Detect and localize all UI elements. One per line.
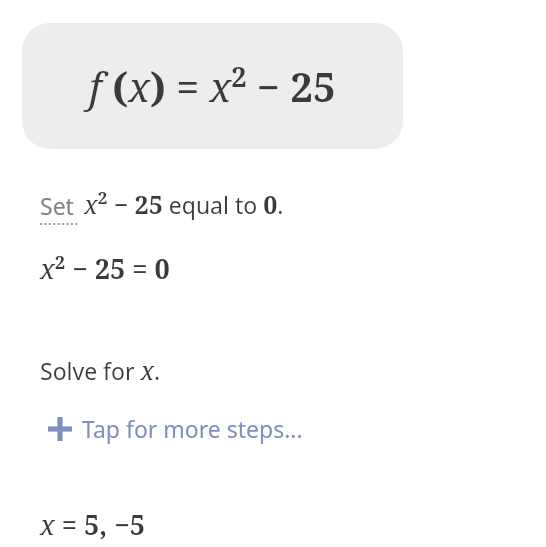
button[interactable]: f (x) = x2 − 25 (22, 23, 403, 149)
button[interactable]: Set (40, 186, 284, 225)
staticText: x2 − 25 = 0 (40, 249, 170, 287)
staticText: x = 5, −5 (40, 506, 145, 543)
staticText: f (x) = x2 − 25 (89, 58, 336, 114)
button[interactable]: Tap for more steps (48, 413, 303, 444)
button[interactable]: Solve for x. (40, 353, 161, 387)
staticText: Solve for x. (40, 353, 161, 387)
staticText: Set (40, 190, 74, 221)
staticText: Tap for more steps... (82, 413, 303, 444)
staticText: x2 − 25 equal to 0. (78, 186, 284, 221)
